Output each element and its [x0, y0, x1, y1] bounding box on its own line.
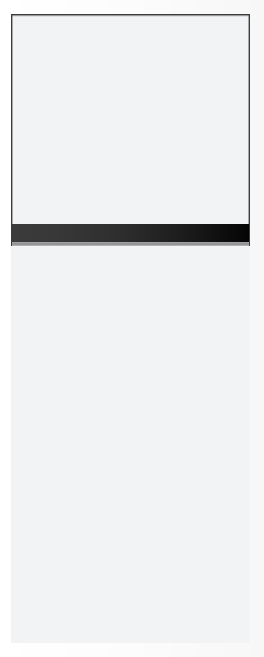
- button[interactable]: Divider bar: [12, 224, 249, 242]
